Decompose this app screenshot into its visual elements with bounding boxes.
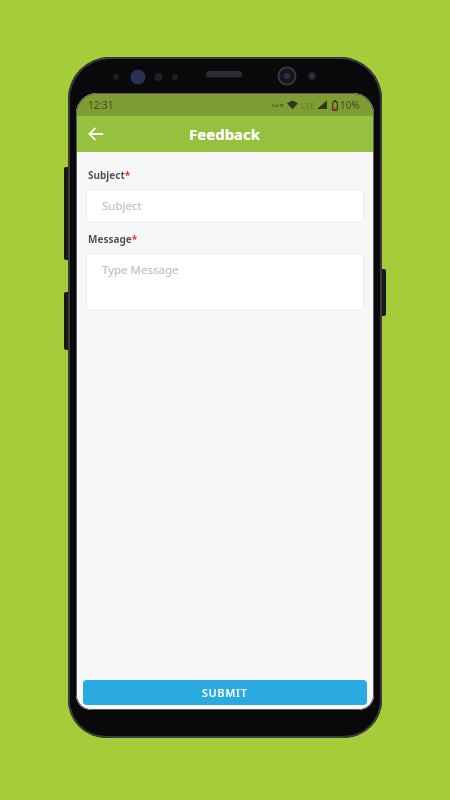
staticText: VoLTE bbox=[272, 103, 284, 108]
staticText: Message* bbox=[88, 232, 138, 246]
staticText: SUBMIT bbox=[202, 686, 248, 700]
button[interactable]: Type Message bbox=[86, 253, 364, 311]
staticText: Type Message bbox=[102, 262, 179, 278]
button[interactable]: Subject bbox=[86, 189, 364, 223]
button[interactable] bbox=[84, 122, 108, 146]
staticText: Subject bbox=[102, 198, 142, 214]
button[interactable]: SUBMIT bbox=[83, 680, 367, 705]
staticText: LTE bbox=[301, 100, 315, 111]
staticText: Feedback bbox=[189, 124, 261, 144]
staticText: Subject* bbox=[88, 168, 131, 182]
staticText: 10% bbox=[340, 98, 360, 112]
staticText: 12:31 bbox=[88, 98, 114, 112]
